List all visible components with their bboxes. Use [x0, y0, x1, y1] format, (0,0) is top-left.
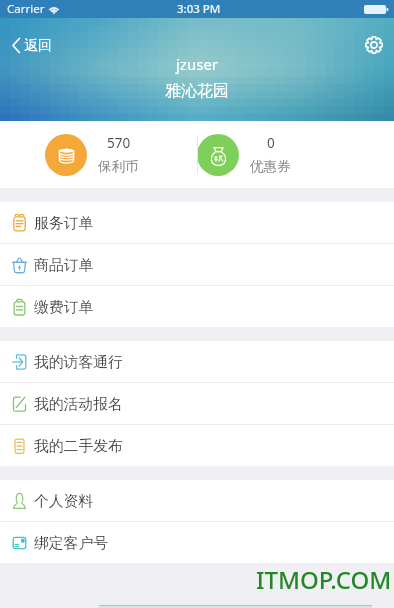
- staticText: 我的二手发布: [34, 437, 123, 456]
- staticText: 返回: [24, 37, 52, 55]
- button[interactable]: Settings: [358, 29, 390, 61]
- staticText: 个人资料: [34, 492, 94, 511]
- button[interactable]: 服务订单: [0, 202, 394, 243]
- staticText: Carrier: [7, 1, 45, 17]
- staticText: 缴费订单: [34, 298, 94, 317]
- button[interactable]: 绑定客户号: [0, 522, 394, 563]
- staticText: 雅沁花园: [165, 81, 229, 101]
- staticText: 3:03 PM: [177, 1, 221, 17]
- staticText: ITMOP.COM: [256, 563, 392, 596]
- button[interactable]: 我的活动报名: [0, 383, 394, 424]
- staticText: jzuser: [176, 54, 219, 74]
- staticText: 0: [267, 134, 275, 152]
- button[interactable]: 个人资料: [0, 480, 394, 521]
- button[interactable]: 商品订单: [0, 244, 394, 285]
- button[interactable]: 我的访客通行: [0, 341, 394, 382]
- button[interactable]: 缴费订单: [0, 286, 394, 327]
- staticText: 商品订单: [34, 256, 94, 275]
- staticText: 保利币: [98, 158, 139, 175]
- staticText: 优惠券: [250, 158, 291, 175]
- button[interactable]: 0: [197, 121, 394, 188]
- staticText: 服务订单: [34, 214, 94, 233]
- staticText: 绑定客户号: [34, 534, 108, 553]
- staticText: 我的访客通行: [34, 353, 123, 372]
- button[interactable]: 返回: [6, 30, 60, 58]
- button[interactable]: 我的二手发布: [0, 425, 394, 466]
- staticText: 我的活动报名: [34, 395, 123, 414]
- staticText: 570: [107, 134, 131, 152]
- button[interactable]: 570: [45, 121, 197, 188]
